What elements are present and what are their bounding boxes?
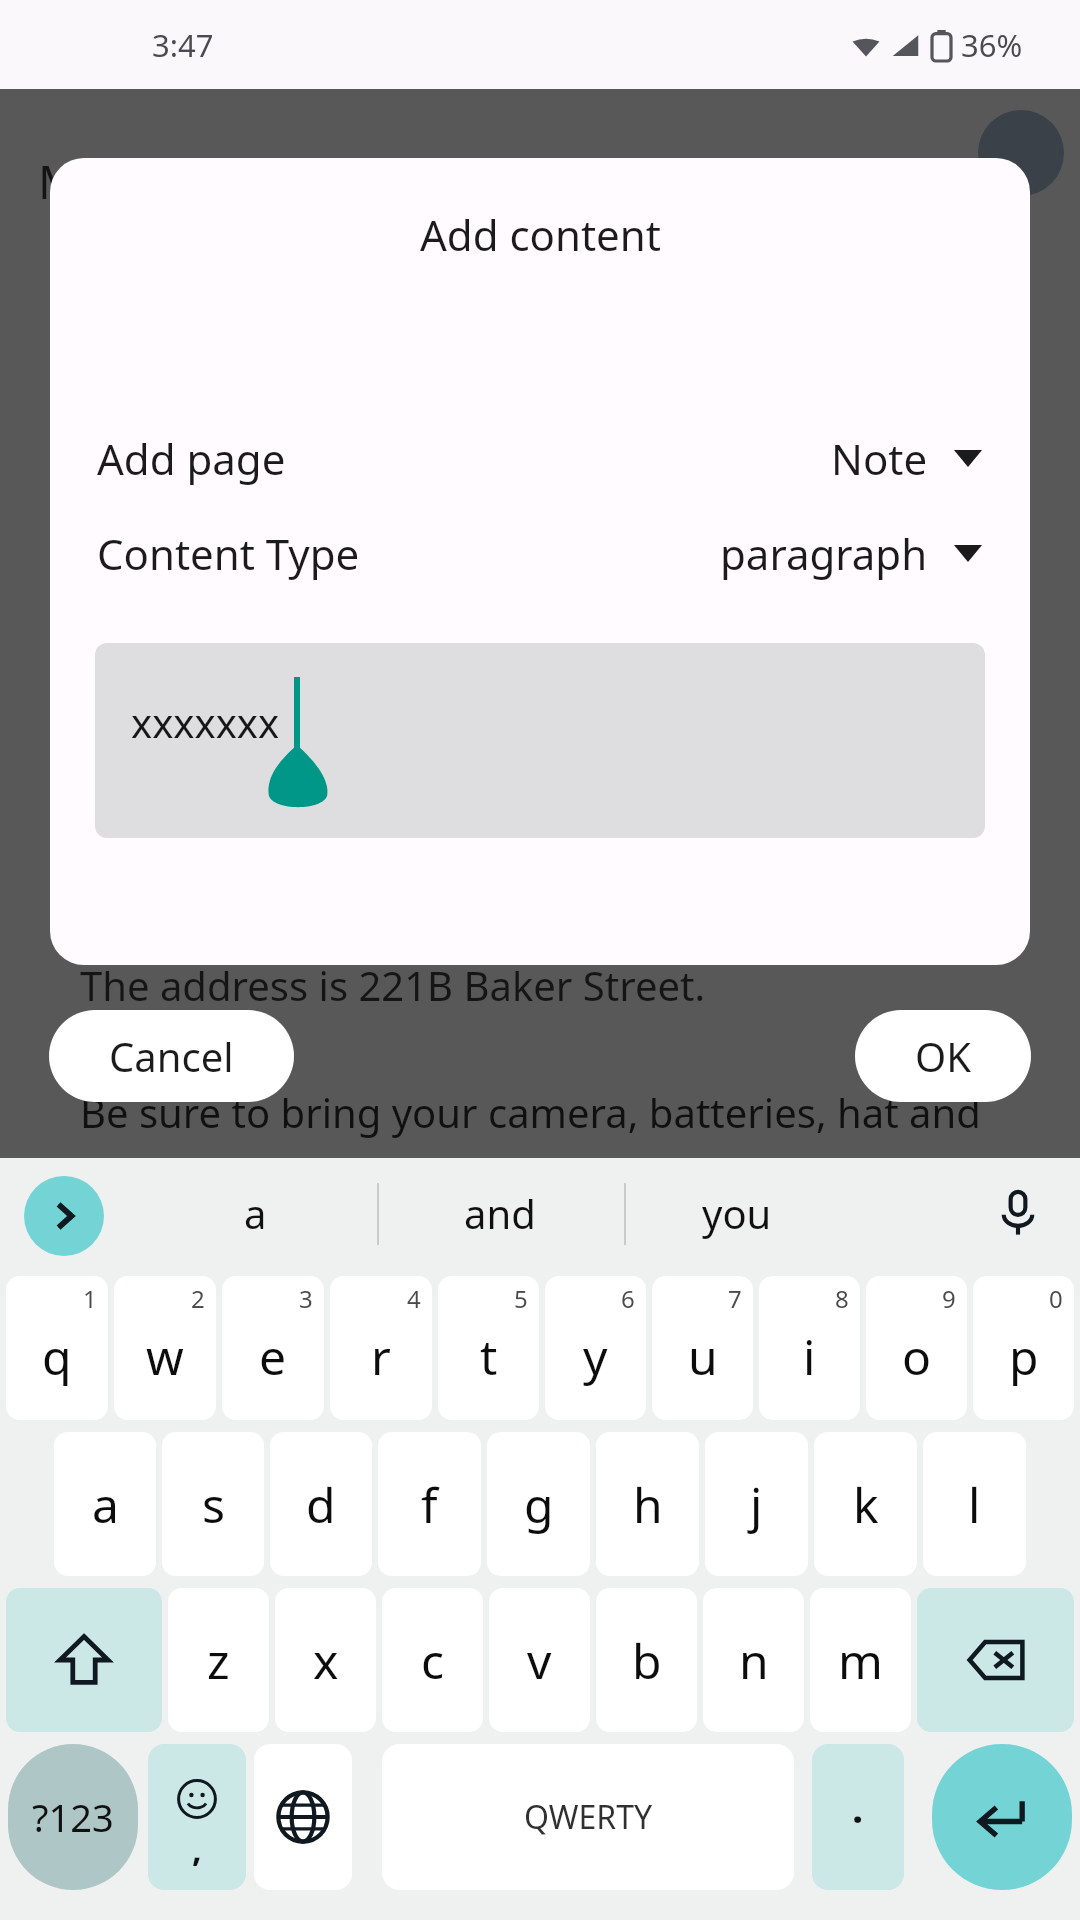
staticText: 9 (942, 1282, 956, 1315)
staticText: 7 (728, 1282, 742, 1315)
button[interactable]: v (489, 1588, 590, 1732)
button[interactable]: ?123 (8, 1744, 138, 1890)
staticText: p (1009, 1324, 1039, 1389)
button[interactable]: f (378, 1432, 481, 1576)
staticText: paragraph (720, 525, 928, 582)
staticText: m (838, 1628, 883, 1693)
staticText: f (421, 1472, 438, 1537)
staticText: ?123 (32, 1791, 114, 1843)
button[interactable]: QWERTY (382, 1744, 794, 1890)
staticText: xxxxxxx (131, 695, 280, 749)
button[interactable]: s (162, 1432, 264, 1576)
button[interactable]: d (270, 1432, 372, 1576)
staticText: 2 (191, 1282, 205, 1315)
staticText: 1 (83, 1282, 97, 1315)
staticText: 4 (407, 1282, 421, 1315)
button[interactable]: . (812, 1744, 904, 1890)
staticText: u (688, 1324, 718, 1389)
staticText: x (313, 1628, 339, 1693)
button[interactable]: a (54, 1432, 156, 1576)
button[interactable]: e (222, 1276, 324, 1420)
button[interactable]: g (487, 1432, 590, 1576)
staticText: 0 (1049, 1282, 1063, 1315)
staticText: Cancel (109, 1029, 234, 1083)
button[interactable]: r (330, 1276, 432, 1420)
button[interactable]: u (652, 1276, 753, 1420)
staticText: t (480, 1324, 498, 1389)
button[interactable]: j (705, 1432, 808, 1576)
staticText: o (902, 1324, 932, 1389)
button[interactable]: Content Type (97, 525, 982, 582)
staticText: v (527, 1628, 552, 1693)
button[interactable]: Backspace (917, 1588, 1074, 1732)
staticText: remote control on this trip. (80, 1148, 586, 1202)
staticText: M (38, 150, 80, 213)
staticText: z (207, 1628, 230, 1693)
staticText: 36% (961, 24, 1023, 66)
button[interactable]: z (168, 1588, 269, 1732)
staticText: j (750, 1472, 763, 1537)
staticText: 8 (835, 1282, 849, 1315)
staticText: n (739, 1628, 769, 1693)
button[interactable]: xxxxxxx (95, 643, 985, 838)
staticText: Add page (97, 430, 286, 487)
staticText: q (42, 1324, 72, 1389)
staticText: a (92, 1472, 119, 1537)
button[interactable]: More suggestions (24, 1176, 104, 1256)
staticText: h (633, 1472, 663, 1537)
button[interactable]: Cancel (49, 1010, 294, 1102)
staticText: g (524, 1472, 554, 1537)
staticText: i (803, 1324, 816, 1389)
staticText: e (259, 1324, 287, 1389)
button[interactable]: n (703, 1588, 804, 1732)
staticText: you (702, 1186, 772, 1240)
button[interactable]: m (810, 1588, 911, 1732)
staticText: y (583, 1324, 608, 1389)
button[interactable]: i (759, 1276, 860, 1420)
button[interactable]: c (382, 1588, 483, 1732)
staticText: The address is 221B Baker Street. (80, 958, 706, 1012)
button[interactable]: o (866, 1276, 967, 1420)
button[interactable]: h (596, 1432, 699, 1576)
button[interactable]: Add page (97, 430, 982, 487)
staticText: c (421, 1628, 445, 1693)
staticText: Be sure to bring your camera, batteries,… (80, 1085, 981, 1139)
button[interactable]: OK (855, 1010, 1031, 1102)
staticText: Add content (420, 206, 661, 263)
staticText: and (464, 1186, 536, 1240)
staticText: r (371, 1324, 391, 1389)
staticText: d (306, 1472, 336, 1537)
button[interactable]: p (973, 1276, 1074, 1420)
staticText: k (853, 1472, 879, 1537)
button[interactable]: q (6, 1276, 108, 1420)
staticText: l (968, 1472, 981, 1537)
button[interactable]: y (545, 1276, 646, 1420)
button[interactable]: you (627, 1168, 847, 1258)
button[interactable]: t (438, 1276, 539, 1420)
staticText: 6 (621, 1282, 635, 1315)
staticText: . (852, 1780, 864, 1834)
staticText: Content Type (97, 525, 360, 582)
button[interactable]: and (380, 1168, 620, 1258)
button[interactable]: Voice input (985, 1180, 1051, 1246)
staticText: s (202, 1472, 225, 1537)
button[interactable]: b (596, 1588, 697, 1732)
staticText: , (192, 1826, 202, 1872)
staticText: Note (831, 430, 928, 487)
staticText: 3 (299, 1282, 313, 1315)
staticText: QWERTY (524, 1795, 653, 1839)
button[interactable]: Emoji (148, 1744, 246, 1890)
button[interactable]: k (814, 1432, 917, 1576)
button[interactable]: w (114, 1276, 216, 1420)
button[interactable]: Change language (254, 1744, 352, 1890)
button[interactable]: x (275, 1588, 376, 1732)
staticText: 3:47 (152, 24, 214, 66)
button[interactable]: l (923, 1432, 1026, 1576)
button[interactable]: a (135, 1168, 375, 1258)
staticText: a (244, 1186, 267, 1240)
staticText: w (146, 1324, 184, 1389)
button[interactable]: Enter (932, 1744, 1072, 1890)
staticText: b (632, 1628, 662, 1693)
staticText: OK (915, 1029, 971, 1083)
button[interactable]: Shift (6, 1588, 162, 1732)
